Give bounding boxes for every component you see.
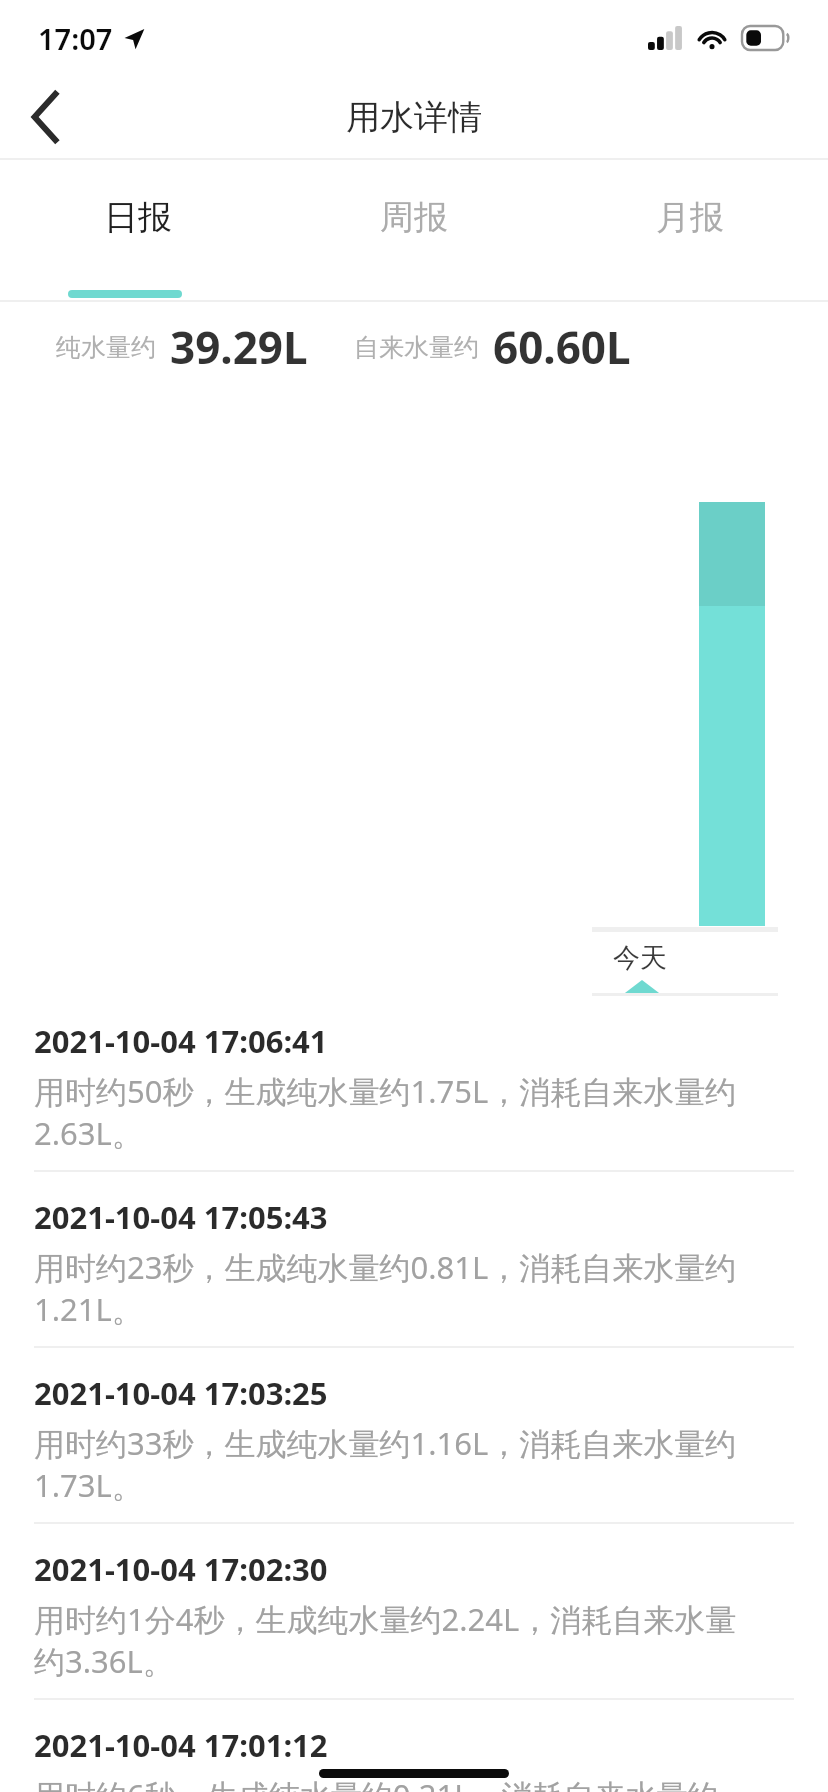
button[interactable]: 日报 (0, 160, 276, 300)
staticText: 纯水量约 (56, 332, 156, 363)
staticText: 自来水量约 (354, 332, 479, 363)
staticText: 60.60L (493, 317, 631, 377)
staticText: 2021-10-04 17:01:12 (34, 1724, 328, 1766)
staticText: 用时约1分4秒，生成纯水量约2.24L，消耗自来水量 (34, 1598, 737, 1640)
button[interactable]: 2021-10-04 17:02:30 (0, 1524, 828, 1700)
staticText: 17:07 (38, 19, 113, 58)
button[interactable] (699, 502, 765, 926)
staticText: 2021-10-04 17:02:30 (34, 1548, 328, 1590)
staticText: 2021-10-04 17:06:41 (34, 1020, 328, 1062)
staticText: 用时约33秒，生成纯水量约1.16L，消耗自来水量约 (34, 1422, 737, 1464)
staticText: 2.63L。 (34, 1112, 143, 1154)
staticText: 日报 (104, 196, 172, 239)
button[interactable]: 2021-10-04 17:03:25 (0, 1348, 828, 1524)
staticText: 月报 (656, 196, 724, 239)
staticText: 39.29L (170, 317, 308, 377)
staticText: 用水详情 (346, 96, 482, 139)
staticText: 用时约6秒，生成纯水量约0.21L，消耗自来水量约 (34, 1774, 719, 1792)
staticText: 1.73L。 (34, 1464, 143, 1506)
staticText: 2021-10-04 17:05:43 (34, 1196, 328, 1238)
button[interactable]: 2021-10-04 17:05:43 (0, 1172, 828, 1348)
button[interactable]: 返回 (0, 76, 90, 158)
staticText: 用时约23秒，生成纯水量约0.81L，消耗自来水量约 (34, 1246, 737, 1288)
staticText: 约3.36L。 (34, 1640, 174, 1682)
button[interactable]: 2021-10-04 17:01:12 (0, 1700, 828, 1792)
staticText: 1.21L。 (34, 1288, 143, 1330)
button[interactable]: 周报 (276, 160, 552, 300)
button[interactable]: 月报 (552, 160, 828, 300)
staticText: 用时约50秒，生成纯水量约1.75L，消耗自来水量约 (34, 1070, 737, 1112)
staticText: 2021-10-04 17:03:25 (34, 1372, 328, 1414)
staticText: 周报 (380, 196, 448, 239)
staticText: 今天 (613, 941, 667, 975)
button[interactable]: 2021-10-04 17:06:41 (0, 996, 828, 1172)
